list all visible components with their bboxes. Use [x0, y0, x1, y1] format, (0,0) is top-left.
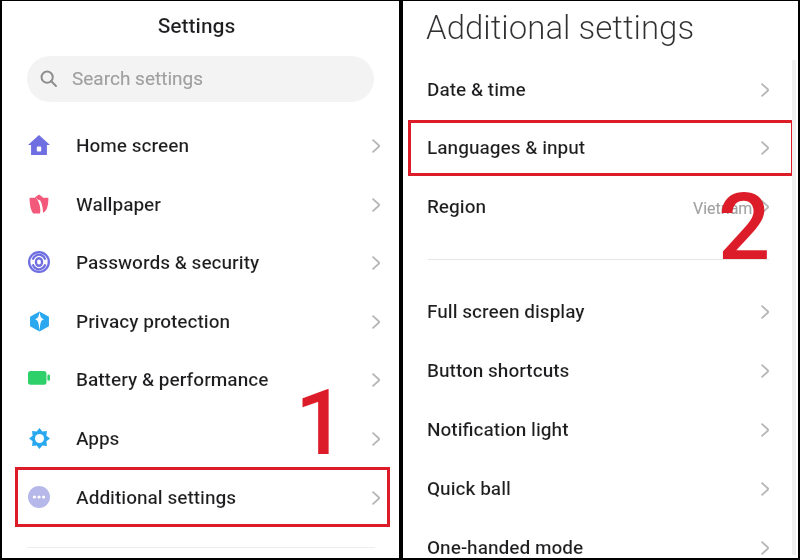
- button[interactable]: Privacy protection: [2, 294, 399, 352]
- button[interactable]: Region: [403, 179, 798, 237]
- staticText: Region: [427, 195, 487, 217]
- button[interactable]: Search settings: [27, 56, 374, 102]
- button[interactable]: Battery & performance: [2, 352, 399, 410]
- button[interactable]: Quick ball: [403, 461, 798, 519]
- staticText: Wallpaper: [76, 193, 161, 215]
- staticText: Vietnam: [693, 199, 753, 218]
- staticText: Additional settings: [426, 8, 695, 47]
- staticText: Search settings: [72, 67, 203, 89]
- button[interactable]: Wallpaper: [2, 177, 399, 235]
- button[interactable]: Apps: [2, 411, 399, 469]
- staticText: Battery & performance: [76, 368, 269, 390]
- button[interactable]: Languages & input: [403, 120, 798, 178]
- staticText: 1: [295, 371, 347, 476]
- staticText: Additional settings: [76, 486, 237, 508]
- button[interactable]: Full screen display: [403, 284, 798, 342]
- button[interactable]: Date & time: [403, 62, 798, 120]
- staticText: Home screen: [76, 134, 190, 156]
- staticText: Languages & input: [427, 136, 586, 158]
- staticText: One-handed mode: [427, 536, 584, 558]
- button[interactable]: Additional settings: [2, 470, 399, 528]
- staticText: Settings: [0, 14, 395, 39]
- button[interactable]: Notification light: [403, 402, 798, 460]
- button[interactable]: Passwords & security: [2, 235, 399, 293]
- staticText: Passwords & security: [76, 251, 260, 273]
- button[interactable]: Button shortcuts: [403, 343, 798, 401]
- staticText: 2: [718, 174, 771, 282]
- staticText: Button shortcuts: [427, 359, 570, 381]
- button[interactable]: Home screen: [2, 118, 399, 176]
- button[interactable]: One-handed mode: [403, 520, 798, 560]
- staticText: Quick ball: [427, 477, 511, 499]
- staticText: Full screen display: [427, 300, 585, 322]
- staticText: Date & time: [427, 78, 526, 100]
- staticText: Apps: [76, 427, 120, 449]
- staticText: Privacy protection: [76, 310, 231, 332]
- staticText: Notification light: [427, 418, 569, 440]
